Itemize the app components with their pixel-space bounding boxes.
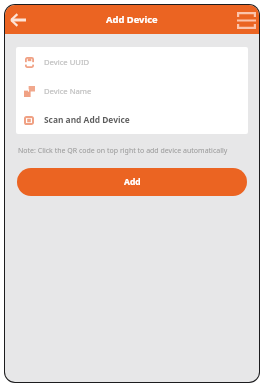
- staticText: Add: [124, 176, 141, 188]
- button[interactable]: Device Name: [16, 76, 248, 105]
- staticText: Scan and Add Device: [44, 114, 130, 125]
- button[interactable]: Scan QR code: [234, 8, 258, 32]
- staticText: Device Name: [44, 86, 92, 96]
- staticText: Device UUID: [44, 57, 90, 67]
- staticText: Add Device: [106, 13, 158, 26]
- staticText: Note: Click the QR code on top right to …: [18, 146, 228, 156]
- button[interactable]: Scan and Add Device: [16, 105, 248, 134]
- button[interactable]: Back: [7, 9, 29, 31]
- button[interactable]: Device UUID: [16, 47, 248, 76]
- button[interactable]: Add: [17, 168, 247, 196]
